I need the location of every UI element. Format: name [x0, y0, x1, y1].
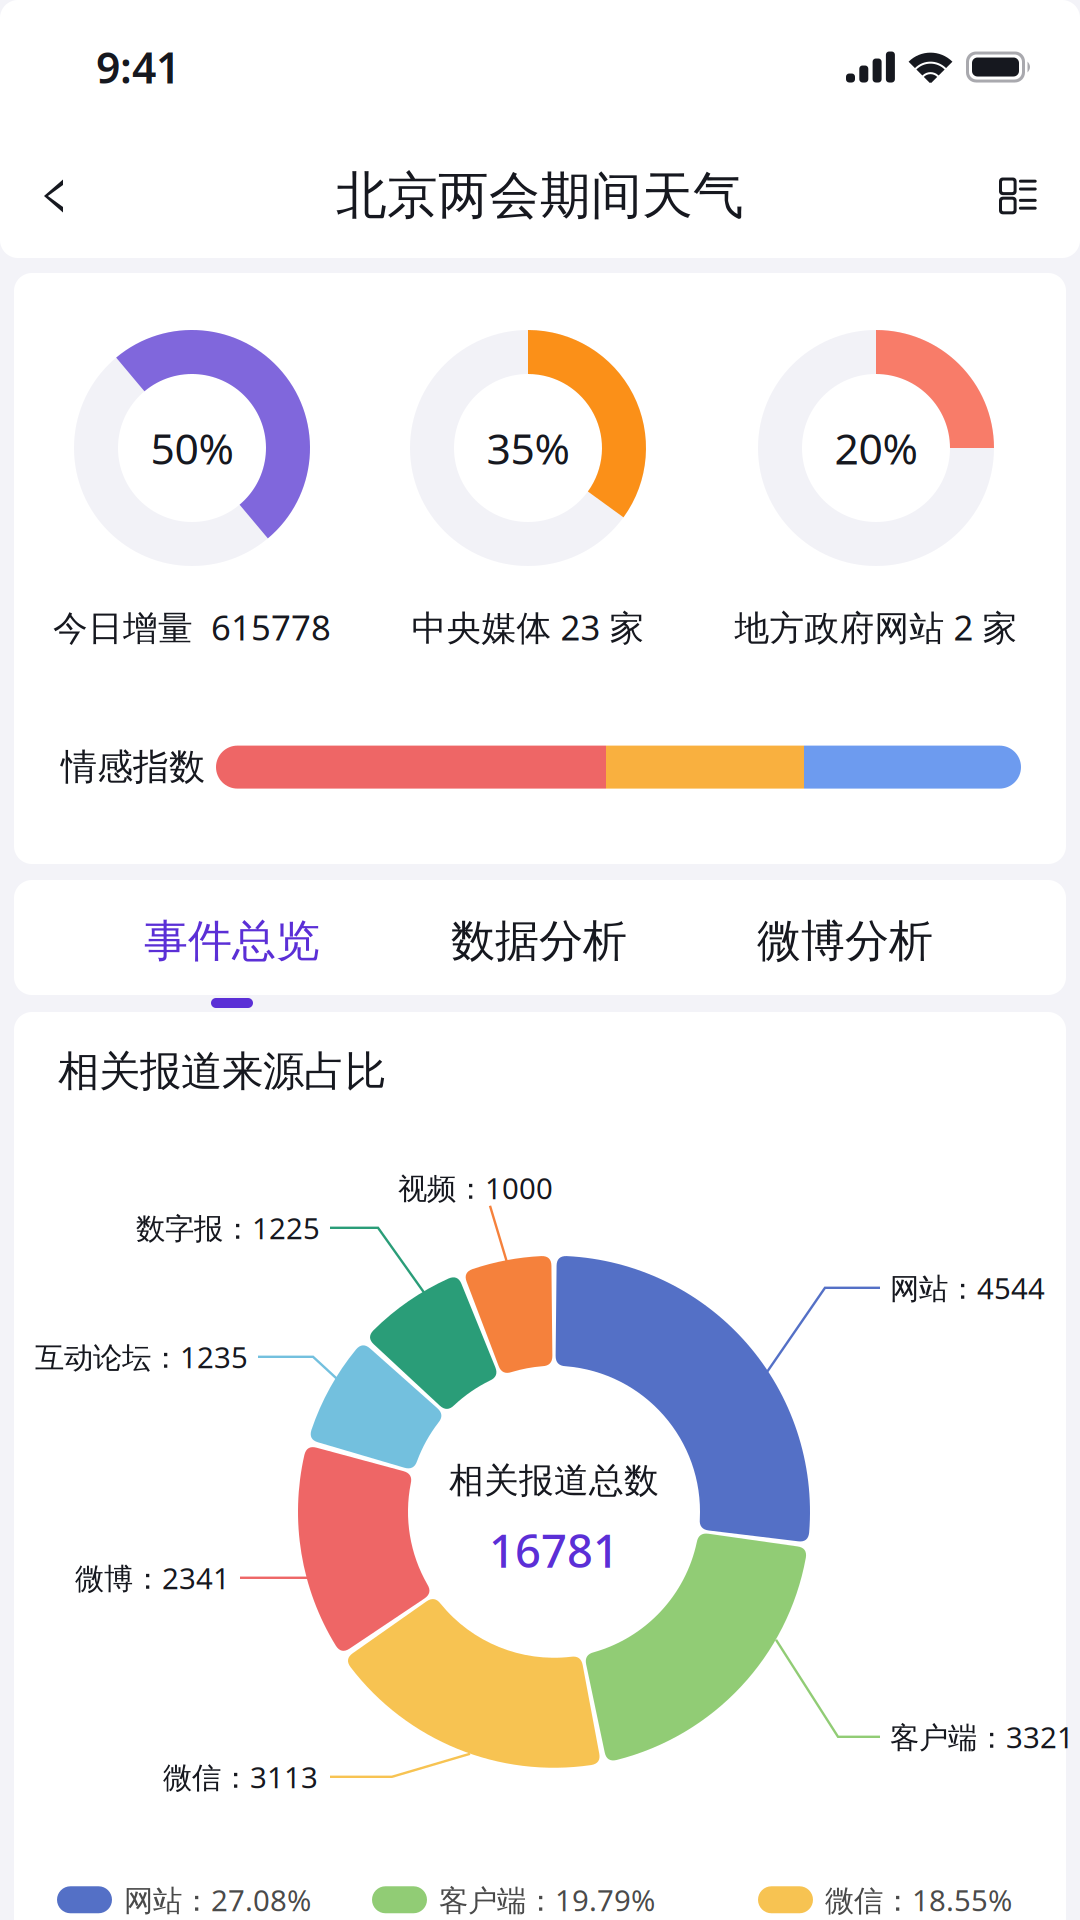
staticText: 北京两会期间天气 [336, 165, 744, 227]
staticText: 相关报道总数 [449, 1459, 659, 1502]
staticText: 客户端：19.79% [439, 1880, 655, 1919]
staticText: 16781 [489, 1520, 619, 1580]
button[interactable]: 列表 [966, 144, 1070, 248]
staticText: 网站：27.08% [124, 1880, 311, 1919]
staticText: 互动论坛：1235 [35, 1337, 248, 1376]
staticText: 微信：18.55% [825, 1880, 1012, 1919]
button[interactable]: 数据分析 [409, 880, 669, 995]
staticText: 微博分析 [757, 914, 933, 968]
staticText: 情感指数 [61, 745, 205, 789]
staticText: 数据分析 [451, 914, 627, 968]
staticText: 事件总览 [144, 914, 320, 968]
staticText: 今日增量 615778 [53, 604, 331, 650]
staticText: 微信：3113 [163, 1757, 318, 1796]
button[interactable]: 微博分析 [715, 880, 975, 995]
staticText: 35% [486, 420, 569, 476]
button[interactable]: 返回 [1, 144, 105, 248]
staticText: 地方政府网站 2 家 [734, 604, 1017, 650]
staticText: 20% [834, 420, 917, 476]
staticText: 微博：2341 [75, 1558, 230, 1597]
staticText: 相关报道来源占比 [58, 1046, 386, 1097]
staticText: 网站：4544 [890, 1268, 1045, 1307]
staticText: 客户端：3321 [890, 1717, 1074, 1756]
button[interactable]: 事件总览 [102, 880, 362, 995]
staticText: 数字报：1225 [136, 1208, 320, 1247]
staticText: 9:41 [96, 39, 180, 95]
staticText: 视频：1000 [398, 1168, 553, 1207]
staticText: 50% [150, 420, 233, 476]
staticText: 中央媒体 23 家 [411, 604, 644, 650]
